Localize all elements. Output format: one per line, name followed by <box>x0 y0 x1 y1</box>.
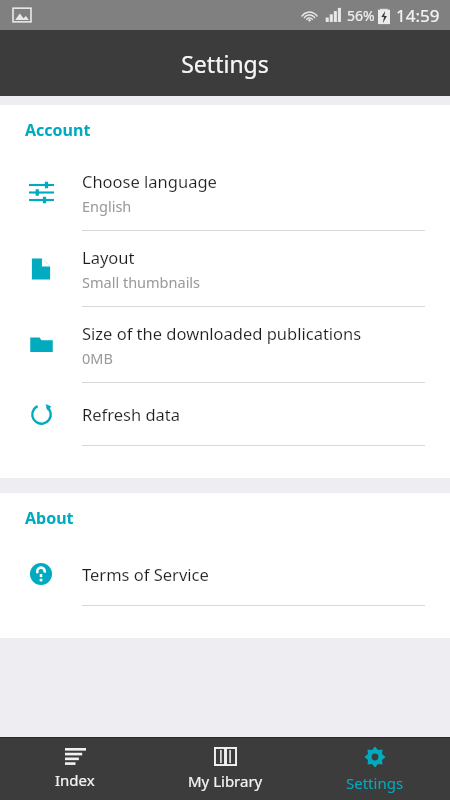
staticText: Index <box>55 770 95 790</box>
staticText: Refresh data <box>82 403 181 425</box>
staticText: Settings <box>181 48 269 79</box>
staticText: Layout <box>82 246 135 268</box>
staticText: Size of the downloaded publications <box>82 322 362 344</box>
other: Size of downloads <box>29 332 54 357</box>
staticText: Terms of Service <box>82 563 209 585</box>
staticText: 56% <box>347 6 375 25</box>
other: Terms of Service <box>29 562 53 586</box>
button[interactable]: Terms of Service <box>0 543 450 606</box>
staticText: Account <box>25 119 91 141</box>
other: Refresh data <box>29 402 54 427</box>
button[interactable]: Refresh data <box>0 383 450 446</box>
button[interactable]: Size of downloads <box>0 307 450 383</box>
staticText: 14:59 <box>396 4 440 27</box>
button[interactable]: My Library <box>150 738 300 800</box>
staticText: My Library <box>188 771 263 791</box>
staticText: About <box>25 507 74 529</box>
staticText: English <box>82 196 132 216</box>
staticText: Choose language <box>82 170 217 192</box>
staticText: 0MB <box>82 348 113 368</box>
button[interactable]: Choose language <box>0 155 450 231</box>
other: Choose language <box>29 180 54 205</box>
other: Layout <box>29 257 53 281</box>
button[interactable]: Layout <box>0 231 450 307</box>
button[interactable]: Index <box>0 738 150 800</box>
staticText: Settings <box>346 773 404 793</box>
button[interactable]: Settings <box>300 738 450 800</box>
staticText: Small thumbnails <box>82 272 201 292</box>
